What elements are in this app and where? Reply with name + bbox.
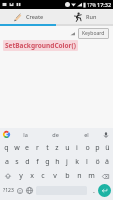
button[interactable]: v: [49, 169, 61, 183]
staticText: el: [84, 131, 89, 138]
button[interactable]: e: [22, 141, 32, 155]
staticText: z: [55, 143, 59, 153]
staticText: t: [46, 143, 49, 153]
button[interactable]: el: [71, 128, 102, 141]
other: Expand: [70, 31, 75, 36]
staticText: j: [66, 157, 68, 167]
button[interactable]: la: [10, 128, 40, 141]
staticText: u: [65, 143, 70, 153]
button[interactable]: ö: [92, 155, 102, 169]
staticText: l: [86, 157, 88, 167]
staticText: 17:32: [97, 1, 112, 8]
staticText: e: [25, 143, 29, 153]
staticText: .: [93, 186, 95, 196]
button[interactable]: z: [52, 141, 62, 155]
button[interactable]: g: [42, 155, 52, 169]
button[interactable]: h: [52, 155, 62, 169]
staticText: 17%: [87, 2, 96, 8]
staticText: de: [52, 131, 59, 138]
staticText: o: [85, 143, 90, 153]
staticText: y: [19, 171, 23, 181]
staticText: p: [95, 143, 100, 153]
button[interactable]: Shift: [0, 169, 15, 183]
button[interactable]: q: [1, 141, 12, 155]
staticText: SetBackgroundColor(): [5, 41, 76, 50]
button[interactable]: Emoji: [15, 183, 24, 198]
staticText: b: [65, 171, 70, 181]
button[interactable]: de: [40, 128, 71, 141]
staticText: la: [23, 131, 28, 138]
staticText: ?123: [3, 187, 14, 194]
button[interactable]: Backspace: [97, 169, 113, 183]
button[interactable]: ü: [102, 141, 112, 155]
button[interactable]: j: [62, 155, 72, 169]
staticText: r: [36, 143, 39, 153]
staticText: g: [45, 157, 50, 167]
button[interactable]: d: [22, 155, 32, 169]
button[interactable]: Keyboard: [78, 28, 109, 39]
button[interactable]: Google: [3, 131, 10, 138]
staticText: i: [76, 143, 78, 153]
staticText: m: [88, 171, 95, 181]
button[interactable]: b: [61, 169, 73, 183]
staticText: a: [5, 157, 9, 167]
staticText: c: [41, 171, 45, 181]
staticText: v: [53, 171, 57, 181]
button[interactable]: a: [1, 155, 12, 169]
button[interactable]: ?123: [2, 183, 15, 198]
button[interactable]: i: [72, 141, 82, 155]
button[interactable]: y: [15, 169, 26, 183]
button[interactable]: u: [62, 141, 72, 155]
button[interactable]: l: [82, 155, 92, 169]
button[interactable]: o: [82, 141, 92, 155]
staticText: q: [4, 143, 9, 153]
button[interactable]: c: [37, 169, 49, 183]
staticText: w: [14, 143, 20, 153]
staticText: Keyboard: [82, 30, 105, 37]
button[interactable]: f: [32, 155, 42, 169]
button[interactable]: w: [12, 141, 22, 155]
button[interactable]: k: [72, 155, 82, 169]
button[interactable]: .: [89, 183, 98, 198]
staticText: ä: [105, 157, 109, 167]
button[interactable]: ä: [102, 155, 112, 169]
staticText: ö: [95, 157, 100, 167]
staticText: ü: [105, 143, 110, 153]
staticText: Run: [86, 13, 97, 20]
button[interactable]: t: [42, 141, 52, 155]
staticText: n: [77, 171, 82, 181]
staticText: k: [75, 157, 79, 167]
button[interactable]: SetBackgroundColor(): [3, 40, 78, 51]
staticText: d: [25, 157, 30, 167]
staticText: Create: [26, 13, 44, 20]
button[interactable]: s: [12, 155, 22, 169]
button[interactable]: p: [92, 141, 102, 155]
staticText: h: [55, 157, 60, 167]
button[interactable]: Enter: [98, 184, 111, 197]
button[interactable]: r: [32, 141, 42, 155]
button[interactable]: n: [73, 169, 85, 183]
staticText: x: [30, 171, 34, 181]
button[interactable]: Voice input: [102, 131, 110, 139]
button[interactable]: Change language: [24, 183, 34, 198]
staticText: s: [15, 157, 19, 167]
button[interactable]: Run: [56, 9, 113, 24]
button[interactable]: x: [26, 169, 37, 183]
button[interactable]: Create: [0, 9, 56, 24]
button[interactable]: m: [85, 169, 97, 183]
staticText: f: [36, 157, 39, 167]
